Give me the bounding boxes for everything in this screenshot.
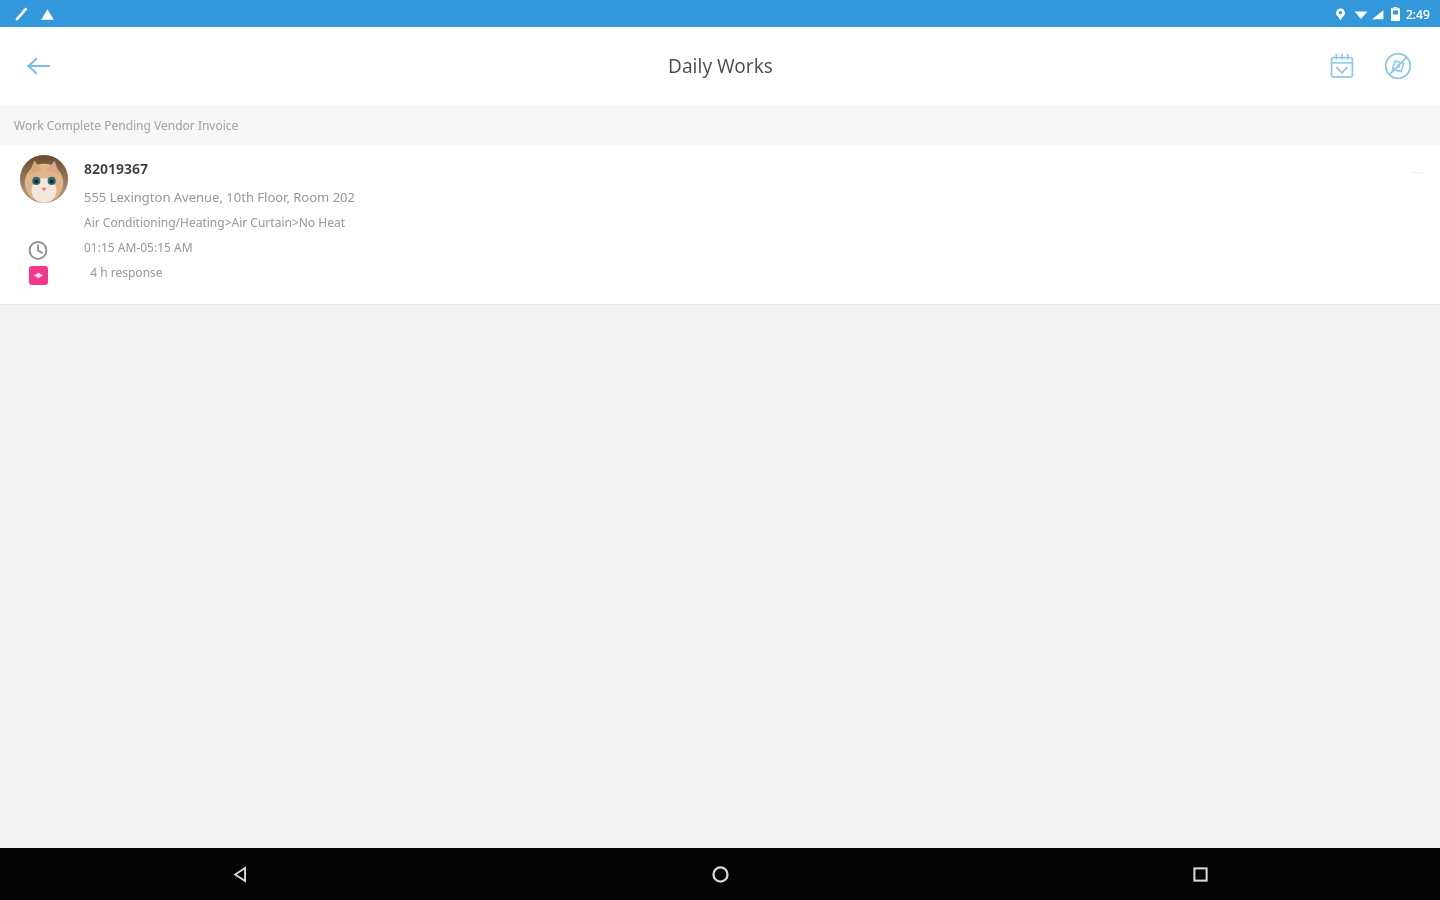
button[interactable]: Home xyxy=(480,848,960,900)
button[interactable]: Back xyxy=(0,848,480,900)
staticText: Work Complete Pending Vendor Invoice xyxy=(14,117,239,133)
staticText: 82019367 xyxy=(84,159,149,178)
button[interactable]: Recent apps xyxy=(960,848,1440,900)
button[interactable]: Select date xyxy=(1318,42,1366,90)
button[interactable]: Filter off xyxy=(1374,42,1422,90)
staticText: Air Conditioning/Heating>Air Curtain>No … xyxy=(84,214,345,230)
staticText: 2:49 xyxy=(1406,6,1430,22)
staticText: — xyxy=(1411,163,1424,179)
staticText: 01:15 AM-05:15 AM xyxy=(84,239,193,255)
staticText: 4 h response xyxy=(84,264,163,280)
button[interactable]: Worker avatar xyxy=(0,145,1440,305)
button[interactable]: Worker avatar xyxy=(20,155,68,203)
button[interactable]: Back xyxy=(12,40,64,92)
staticText: Daily Works xyxy=(668,53,773,79)
staticText: 555 Lexington Avenue, 10th Floor, Room 2… xyxy=(84,188,355,206)
